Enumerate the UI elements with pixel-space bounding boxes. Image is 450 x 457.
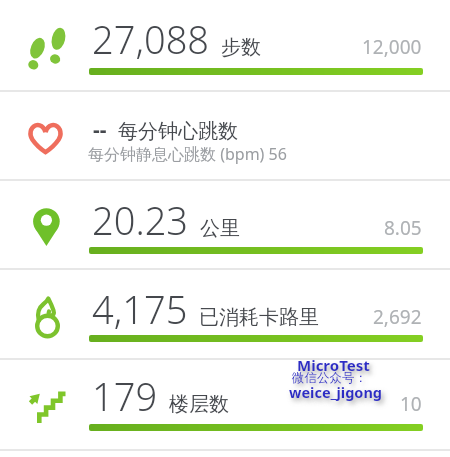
staticText: 楼层数	[169, 392, 229, 417]
staticText: 179	[92, 370, 158, 422]
staticText: 微信公众号：	[292, 370, 367, 386]
button[interactable]: 20.23	[0, 181, 450, 270]
staticText: --	[93, 115, 107, 144]
staticText: 步数	[221, 35, 261, 60]
staticText: 每分钟静息心跳数 (bpm) 56	[88, 143, 287, 165]
button[interactable]: 179	[0, 360, 450, 451]
staticText: 2,692	[373, 304, 422, 330]
staticText: 8.05	[384, 215, 422, 241]
button[interactable]: 27,088	[0, 0, 450, 92]
staticText: 已消耗卡路里	[199, 305, 319, 330]
staticText: 4,175	[92, 283, 188, 335]
staticText: MicroTest	[297, 355, 370, 375]
staticText: 12,000	[362, 34, 422, 60]
staticText: weice_jigong	[289, 382, 382, 402]
staticText: 27,088	[92, 13, 210, 65]
staticText: 公里	[200, 216, 240, 241]
staticText: 20.23	[92, 194, 189, 246]
staticText: 每分钟心跳数	[118, 119, 238, 144]
button[interactable]: 4,175	[0, 270, 450, 360]
button[interactable]: --	[0, 92, 450, 181]
staticText: 10	[400, 391, 422, 417]
